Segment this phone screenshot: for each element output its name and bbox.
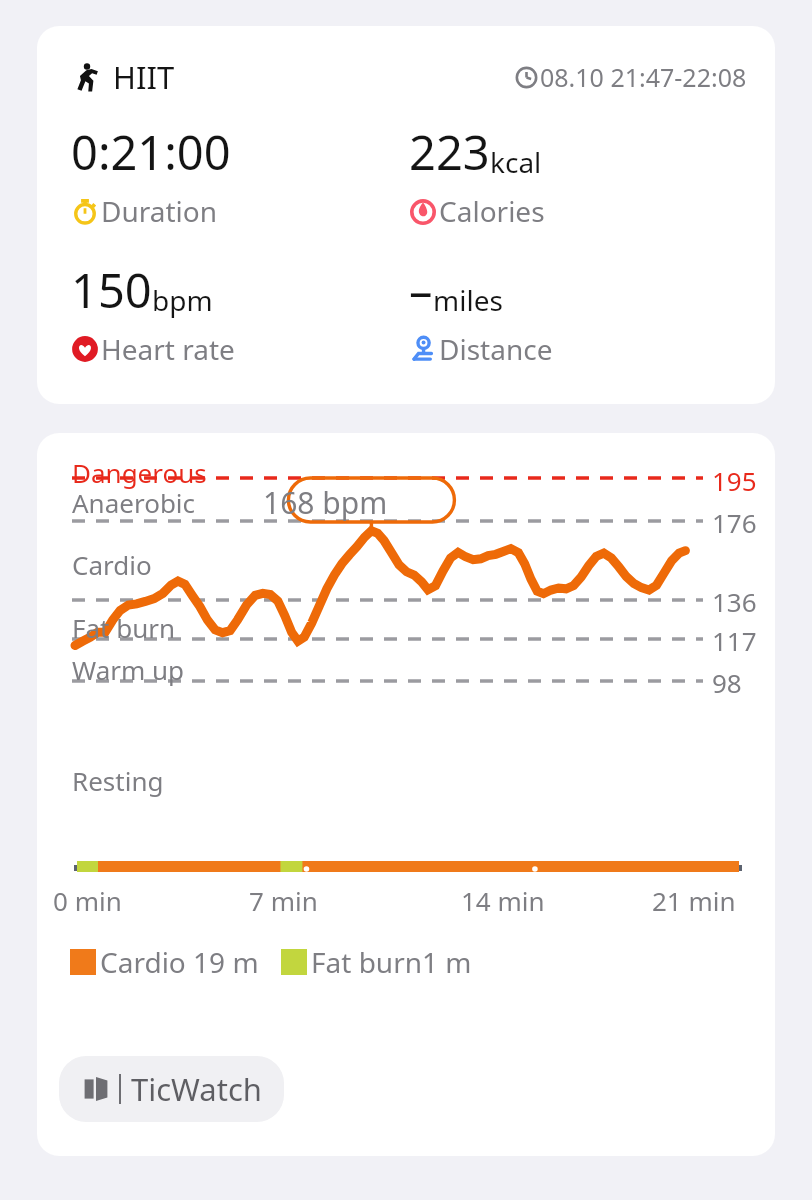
staticText: 98	[712, 665, 742, 700]
staticText: Dangerous	[72, 455, 207, 490]
staticText: Resting	[72, 763, 164, 798]
staticText: miles	[433, 281, 503, 319]
staticText: kcal	[490, 143, 542, 181]
staticText: TicWatch	[131, 1068, 262, 1110]
staticText: Cardio	[72, 547, 152, 582]
button[interactable]: 150	[71, 258, 409, 368]
staticText: bpm	[152, 281, 213, 319]
staticText: 150	[71, 258, 152, 322]
staticText: 0 min	[53, 883, 122, 918]
staticText: 176	[712, 505, 757, 540]
button[interactable]: –	[409, 258, 747, 368]
button[interactable]: 0:21:00	[71, 120, 409, 230]
staticText: 195	[712, 463, 757, 498]
staticText: 117	[712, 623, 757, 658]
staticText: Anaerobic	[72, 485, 196, 520]
staticText: 223	[409, 120, 490, 184]
button[interactable]: Workout type	[37, 26, 775, 404]
staticText: Warm up	[72, 652, 185, 687]
button[interactable]: Dangerous	[37, 433, 775, 1156]
staticText: HIIT	[113, 56, 175, 98]
staticText: Fat burn1 m	[311, 943, 472, 981]
staticText: Heart rate	[101, 330, 235, 368]
staticText: 21 min	[652, 883, 736, 918]
staticText: Duration	[101, 192, 218, 230]
staticText: Calories	[439, 192, 545, 230]
staticText: 136	[712, 584, 757, 619]
other: Workout type	[71, 61, 103, 93]
staticText: 14 min	[461, 883, 545, 918]
staticText: 168 bpm	[263, 482, 388, 523]
staticText: 08.10 21:47-22:08	[540, 60, 747, 94]
staticText: –	[409, 258, 433, 322]
staticText: Distance	[439, 330, 553, 368]
button[interactable]: TicWatch	[59, 1056, 284, 1122]
staticText: 0:21:00	[71, 120, 231, 184]
button[interactable]: 223	[409, 120, 747, 230]
staticText: Cardio 19 m	[100, 943, 259, 981]
staticText: Fat burn	[72, 610, 176, 645]
staticText: 7 min	[249, 883, 318, 918]
